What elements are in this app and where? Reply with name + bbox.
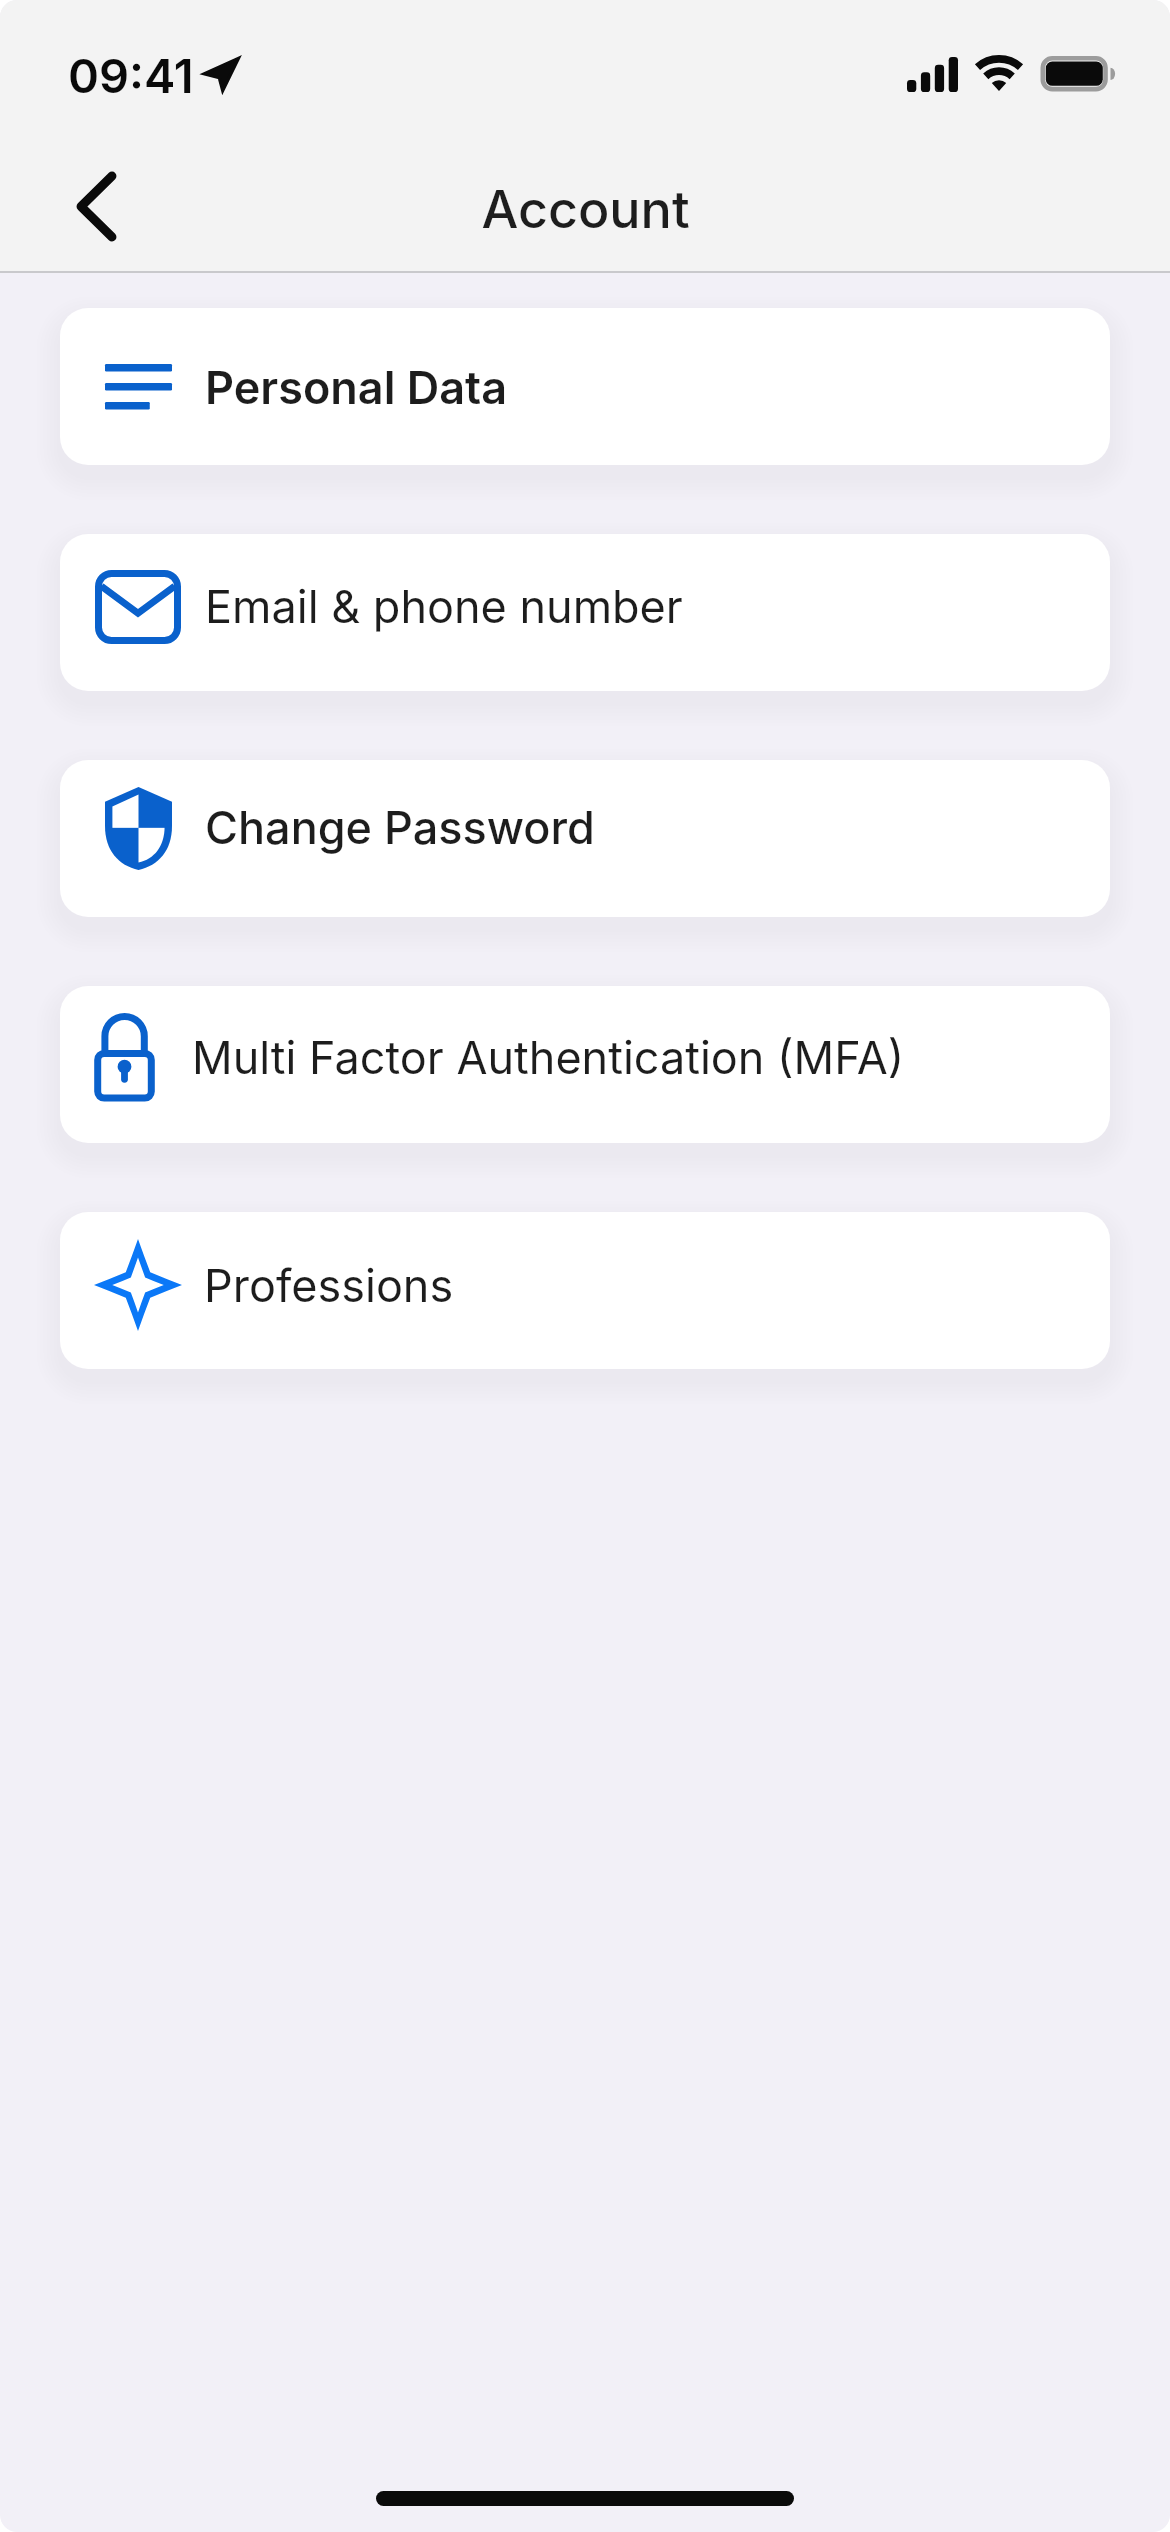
staticText: Professions — [204, 1258, 454, 1312]
staticText: Personal Data — [205, 360, 508, 414]
button[interactable]: Email & phone number — [60, 534, 1110, 691]
staticText: Account — [481, 178, 690, 241]
button[interactable]: Change Password — [60, 760, 1110, 917]
staticText: Email & phone number — [205, 579, 683, 633]
button[interactable]: Professions — [60, 1212, 1110, 1369]
button[interactable]: Multi Factor Authentication (MFA) — [60, 986, 1110, 1143]
staticText: Multi Factor Authentication (MFA) — [192, 1030, 905, 1084]
staticText: 09:41 — [68, 47, 194, 104]
button[interactable]: Back — [41, 151, 151, 261]
staticText: Change Password — [205, 800, 595, 854]
button[interactable]: Personal Data — [60, 308, 1110, 465]
